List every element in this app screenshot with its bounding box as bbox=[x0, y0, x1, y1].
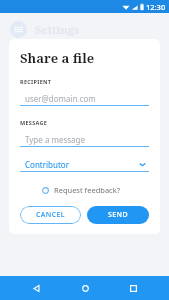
staticText: Type a message bbox=[25, 134, 86, 145]
staticText: CANCEL bbox=[36, 210, 65, 220]
button[interactable]: Type a message bbox=[20, 133, 149, 147]
staticText: Share a file bbox=[20, 49, 95, 67]
button[interactable]: Request feedback? bbox=[42, 185, 149, 195]
staticText: Request feedback? bbox=[54, 185, 120, 195]
staticText: RECIPIENT bbox=[20, 78, 52, 85]
button[interactable]: SEND bbox=[87, 206, 149, 224]
button[interactable]: Contributor bbox=[20, 158, 149, 172]
staticText: user@domain.com bbox=[25, 93, 96, 104]
staticText: MESSAGE bbox=[20, 119, 48, 126]
button[interactable]: Home bbox=[72, 276, 98, 300]
button[interactable]: CANCEL bbox=[20, 206, 81, 224]
button[interactable]: Recents bbox=[120, 276, 146, 300]
staticText: SEND bbox=[108, 210, 128, 220]
staticText: Settings bbox=[35, 22, 80, 37]
staticText: 12:30 bbox=[146, 2, 166, 12]
button[interactable]: Back bbox=[23, 276, 49, 300]
staticText: Contributor bbox=[25, 159, 69, 170]
button[interactable]: user@domain.com bbox=[20, 92, 149, 106]
